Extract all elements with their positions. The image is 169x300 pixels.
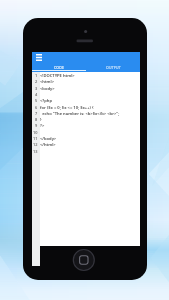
staticText: 3 — [35, 86, 38, 91]
staticText: </html> — [40, 142, 56, 147]
staticText: <body> — [40, 86, 55, 91]
staticText: <html> — [40, 79, 55, 84]
staticText: <!DOCTYPE html> — [40, 73, 75, 78]
staticText: 12 — [33, 142, 38, 147]
staticText: 8 — [35, 117, 38, 122]
staticText: echo "The number is: <b>$x</b> <br>"; — [40, 111, 120, 116]
staticText: } — [40, 117, 42, 122]
staticText: 2 — [35, 79, 38, 84]
staticText: 7 — [35, 111, 38, 116]
button[interactable]: OUTPUT — [86, 63, 140, 71]
staticText: OUTPUT — [106, 65, 121, 70]
staticText: 1 — [35, 73, 38, 78]
staticText: <?php — [40, 98, 52, 103]
staticText: CODE — [54, 65, 65, 70]
staticText: 6 — [35, 105, 38, 110]
button[interactable]: CODE — [32, 63, 86, 71]
staticText: ?> — [40, 123, 45, 128]
staticText: 11 — [33, 136, 38, 141]
staticText: 10 — [33, 130, 38, 135]
button[interactable]: Open navigation menu — [33, 52, 44, 63]
staticText: for ($x = 0; $x <= 10; $x++) { — [40, 105, 94, 110]
staticText: 13 — [33, 149, 38, 154]
staticText: 5 — [35, 98, 38, 103]
staticText: </body> — [40, 136, 57, 141]
staticText: 4 — [35, 92, 38, 97]
staticText: 9 — [35, 123, 38, 128]
